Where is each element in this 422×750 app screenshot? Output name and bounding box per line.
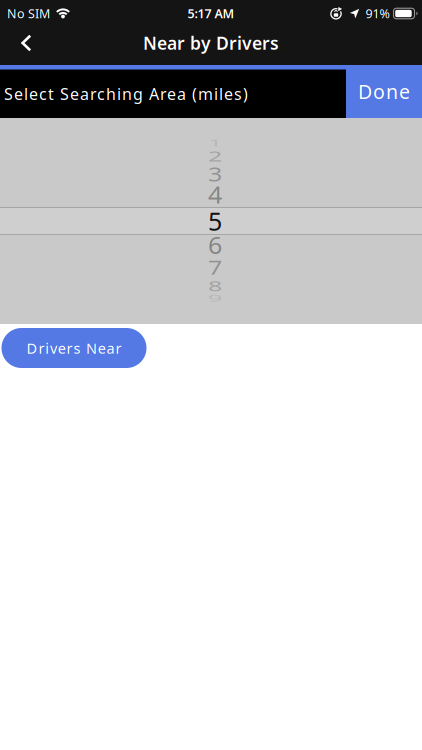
staticText: 6	[208, 228, 222, 262]
staticText: 9	[208, 281, 222, 315]
button[interactable]: Done	[346, 65, 422, 118]
staticText: Near by Drivers	[143, 31, 279, 55]
button[interactable]: Back	[0, 34, 32, 52]
staticText: Select Searching Area (miles)	[4, 83, 248, 105]
staticText: Done	[358, 78, 410, 105]
staticText: 2	[208, 139, 222, 173]
staticText: 7	[208, 250, 222, 284]
staticText: 1	[208, 126, 222, 160]
staticText: 91%	[365, 5, 389, 22]
staticText: 5	[208, 204, 222, 238]
staticText: 3	[208, 157, 222, 191]
staticText: 4	[208, 178, 222, 212]
staticText: 8	[208, 268, 222, 302]
button[interactable]: Drivers Near	[1, 328, 146, 368]
staticText: Drivers Near	[27, 338, 121, 358]
staticText: No SIM	[7, 5, 50, 22]
staticText: 5:17 AM	[187, 5, 234, 22]
